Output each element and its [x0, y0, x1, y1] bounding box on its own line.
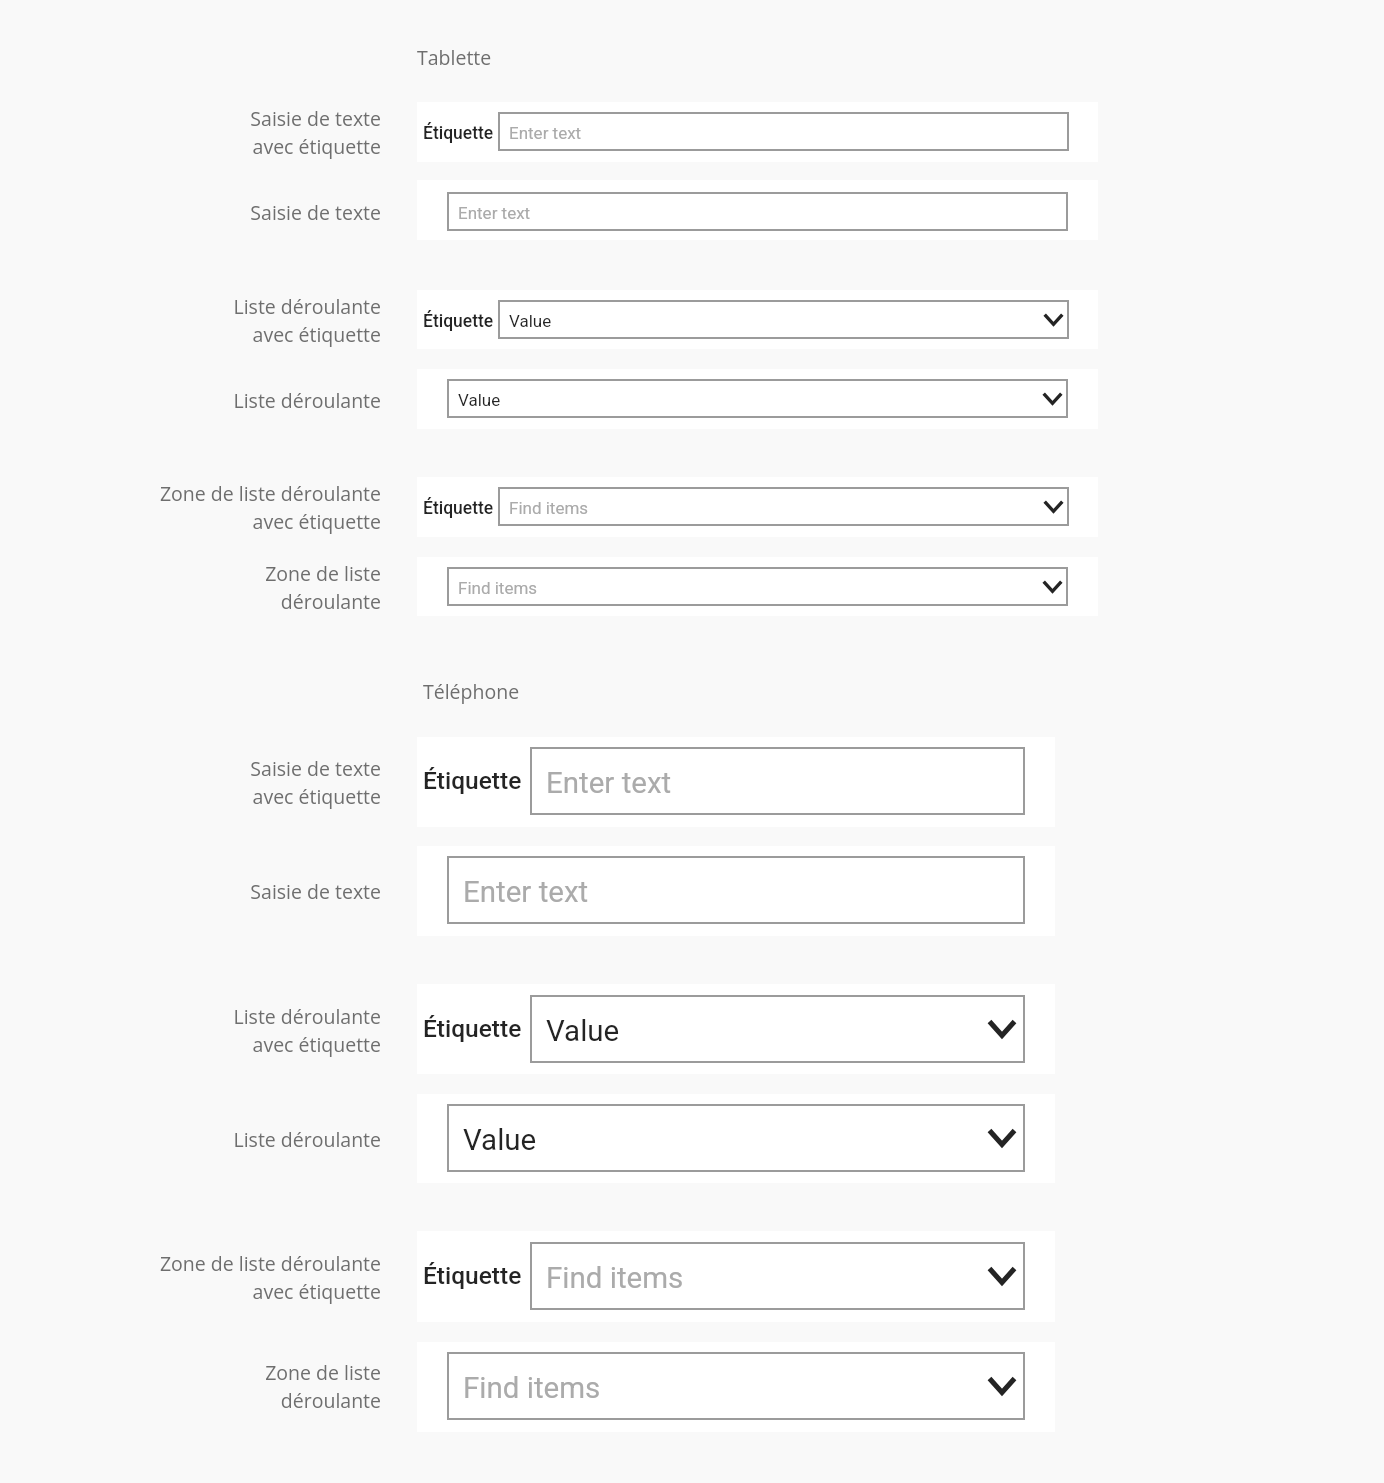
staticText: Étiquette: [423, 123, 494, 144]
staticText: Value: [463, 1123, 537, 1158]
staticText: Zone de liste déroulante avec étiquette: [0, 1250, 381, 1304]
button[interactable]: Dropdown, Value: [498, 300, 1069, 339]
staticText: Saisie de texte avec étiquette: [0, 105, 381, 159]
staticText: Find items: [458, 578, 538, 598]
button[interactable]: Dropdown, Find items: [447, 567, 1068, 606]
staticText: Zone de liste déroulante: [0, 560, 381, 614]
staticText: Liste déroulante avec étiquette: [0, 1003, 381, 1057]
button[interactable]: Text field, Enter text: [498, 112, 1069, 151]
staticText: Étiquette: [423, 311, 494, 332]
staticText: Value: [458, 390, 501, 410]
button[interactable]: Dropdown, Find items: [447, 1352, 1025, 1420]
staticText: Find items: [509, 498, 589, 518]
staticText: Value: [509, 311, 552, 331]
staticText: Saisie de texte: [0, 878, 381, 905]
staticText: Tablette: [417, 44, 492, 71]
button[interactable]: Dropdown, Value: [530, 995, 1025, 1063]
staticText: Étiquette: [423, 1261, 522, 1290]
staticText: Saisie de texte avec étiquette: [0, 755, 381, 809]
staticText: Find items: [463, 1371, 601, 1406]
staticText: Enter text: [463, 875, 589, 910]
staticText: Value: [546, 1014, 620, 1049]
staticText: Enter text: [509, 123, 582, 143]
button[interactable]: Text field, Enter text: [530, 747, 1025, 815]
button[interactable]: Text field, Enter text: [447, 856, 1025, 924]
button[interactable]: Text field, Enter text: [447, 192, 1068, 231]
staticText: Étiquette: [423, 498, 494, 519]
staticText: Liste déroulante: [0, 1126, 381, 1153]
staticText: Enter text: [546, 766, 672, 801]
staticText: Liste déroulante avec étiquette: [0, 293, 381, 347]
staticText: Étiquette: [423, 766, 522, 795]
staticText: Zone de liste déroulante: [0, 1359, 381, 1413]
button[interactable]: Dropdown, Find items: [498, 487, 1069, 526]
staticText: Zone de liste déroulante avec étiquette: [0, 480, 381, 534]
staticText: Étiquette: [423, 1014, 522, 1043]
staticText: Saisie de texte: [0, 199, 381, 226]
button[interactable]: Dropdown, Value: [447, 1104, 1025, 1172]
staticText: Liste déroulante: [0, 387, 381, 414]
button[interactable]: Dropdown, Value: [447, 379, 1068, 418]
staticText: Téléphone: [423, 678, 520, 705]
staticText: Enter text: [458, 203, 531, 223]
staticText: Find items: [546, 1261, 684, 1296]
button[interactable]: Dropdown, Find items: [530, 1242, 1025, 1310]
